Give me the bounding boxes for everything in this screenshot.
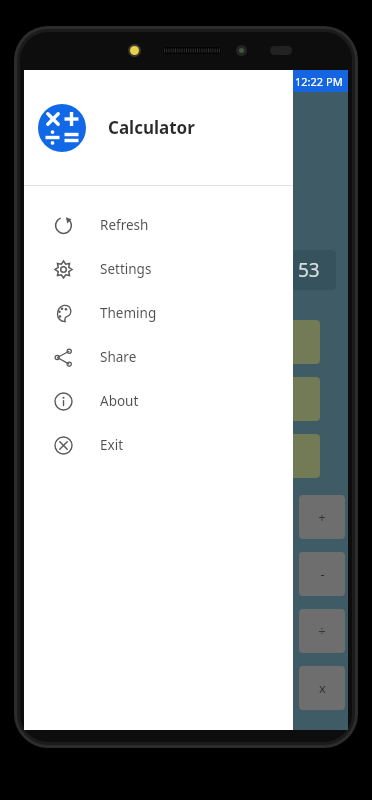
button[interactable]: x bbox=[299, 666, 345, 710]
other: Theming bbox=[54, 304, 73, 323]
button[interactable]: Exit bbox=[24, 423, 293, 467]
staticText: About bbox=[100, 392, 139, 410]
button[interactable]: Theming bbox=[24, 291, 293, 335]
button[interactable]: Share bbox=[24, 335, 293, 379]
staticText: Calculator bbox=[108, 116, 195, 139]
other: Refresh bbox=[54, 216, 73, 235]
staticText: - bbox=[320, 565, 325, 583]
staticText: Theming bbox=[100, 304, 157, 322]
staticText: 53 bbox=[298, 257, 320, 283]
button[interactable] bbox=[274, 434, 320, 478]
staticText: Refresh bbox=[100, 216, 149, 234]
button[interactable]: + bbox=[299, 495, 345, 539]
button[interactable] bbox=[274, 377, 320, 421]
other: Exit bbox=[54, 436, 73, 455]
button[interactable]: Settings bbox=[24, 247, 293, 291]
staticText: Settings bbox=[100, 260, 152, 278]
staticText: Exit bbox=[100, 436, 124, 454]
staticText: x bbox=[319, 679, 326, 697]
staticText: ÷ bbox=[318, 622, 326, 640]
staticText: 12:22 PM bbox=[295, 74, 343, 89]
other: Share bbox=[54, 348, 73, 367]
other: Settings bbox=[54, 260, 73, 279]
staticText: + bbox=[318, 508, 326, 526]
other: About bbox=[54, 392, 73, 411]
button[interactable] bbox=[274, 320, 320, 364]
button[interactable]: - bbox=[299, 552, 345, 596]
button[interactable]: Calculator bbox=[24, 70, 293, 185]
button[interactable]: Refresh bbox=[24, 203, 293, 247]
button[interactable]: ÷ bbox=[299, 609, 345, 653]
button[interactable]: About bbox=[24, 379, 293, 423]
staticText: Share bbox=[100, 348, 137, 366]
